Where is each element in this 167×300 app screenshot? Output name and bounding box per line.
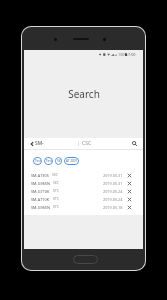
button[interactable]: SM-A730S [24, 171, 143, 179]
staticText: SM-G710K [31, 189, 50, 194]
staticText: SM-G965N [31, 205, 50, 210]
staticText: SM- [35, 140, 44, 147]
button[interactable]: Test [44, 157, 53, 165]
staticText: Test [35, 159, 41, 163]
staticText: SM-A730S [31, 173, 49, 178]
staticText: 7:00 [128, 52, 136, 57]
staticText: 2019.05.24 [103, 197, 123, 202]
button[interactable]: Test [33, 157, 42, 165]
staticText: SK [57, 159, 61, 163]
button[interactable]: Remove [126, 188, 132, 194]
staticText: 2019.05.18 [103, 205, 123, 210]
button[interactable]: Remove [126, 172, 132, 178]
staticText: 2019.05.31 [103, 181, 123, 186]
staticText: | [77, 140, 80, 147]
button[interactable]: SM-A710K [24, 195, 143, 203]
staticText: SM-G965N [31, 181, 50, 186]
button[interactable]: AT 2001 [64, 157, 79, 165]
button[interactable]: Remove [126, 204, 132, 210]
staticText: SKC [52, 173, 58, 177]
staticText: KTC [53, 189, 59, 193]
staticText: Search [68, 87, 100, 101]
staticText: AT 2001 [66, 159, 78, 163]
button[interactable]: Remove [126, 196, 132, 202]
staticText: KTC [53, 205, 59, 209]
staticText: 2019.05.24 [103, 189, 123, 194]
button[interactable]: Search [130, 139, 139, 148]
button[interactable]: SM-G965N [24, 179, 143, 187]
staticText: 100% [118, 52, 128, 57]
button[interactable]: Remove [126, 180, 132, 186]
staticText: SM-A710K [31, 197, 50, 202]
button[interactable]: SM-G965N [24, 203, 143, 211]
staticText: 2019.05.31 [103, 173, 123, 178]
button[interactable]: SK [55, 157, 62, 165]
staticText: Test [46, 159, 52, 163]
staticText: CSC [82, 140, 92, 147]
button[interactable]: Back [28, 140, 35, 147]
staticText: KTC [53, 197, 59, 201]
staticText: SKC [53, 181, 59, 185]
button[interactable]: SM-G710K [24, 187, 143, 195]
